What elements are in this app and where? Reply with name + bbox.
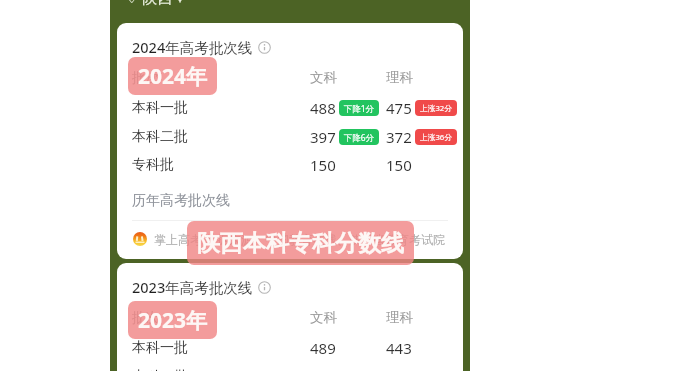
staticText: 上涨36分 <box>420 132 452 143</box>
staticText: 150 <box>310 155 336 175</box>
staticText: 理科 <box>386 69 413 86</box>
staticText: 443 <box>386 338 412 358</box>
staticText: 专科批 <box>132 156 174 174</box>
staticText: 文科 <box>310 69 337 86</box>
button[interactable]: 2023年高考批次线 <box>132 276 271 298</box>
button[interactable]: 历年高考批次线 <box>132 188 230 214</box>
staticText: 2024年高考批次线 <box>132 37 253 57</box>
staticText: 2024年 <box>138 62 208 91</box>
staticText: 489 <box>310 338 336 358</box>
staticText: 本科二批 <box>132 368 188 371</box>
button[interactable]: 本科二批 <box>132 123 310 151</box>
button[interactable]: 本科一批 <box>132 334 310 362</box>
staticText: 2023年高考批次线 <box>132 277 253 297</box>
staticText: 下降6分 <box>344 132 374 143</box>
button[interactable]: 本科一批 <box>132 94 310 122</box>
other: 说明 <box>258 41 271 54</box>
other: 说明 <box>258 281 271 294</box>
staticText: 本科一批 <box>132 339 188 357</box>
staticText: 397 <box>310 127 336 147</box>
staticText: 下降1分 <box>344 103 374 114</box>
staticText: 150 <box>386 155 412 175</box>
button[interactable]: 掌上高考 数据来源：中国教育在线、陕西省教育考试院 <box>132 229 446 249</box>
staticText: ♡ 陕西 ▾ <box>125 0 184 7</box>
staticText: 批次 <box>132 69 159 86</box>
staticText: 掌上高考 数据来源：中国教育在线、陕西省教育考试院 <box>154 231 446 247</box>
staticText: 陕西本科专科分数线 <box>197 229 404 258</box>
button[interactable]: ♡ 陕西 ▾ <box>125 0 184 7</box>
staticText: 批次 <box>132 309 159 326</box>
staticText: 上涨32分 <box>420 103 452 114</box>
staticText: 理科 <box>386 309 413 326</box>
button[interactable]: 本科二批 <box>132 363 310 371</box>
button[interactable]: 专科批 <box>132 151 310 179</box>
staticText: 历年高考批次线 <box>132 192 230 210</box>
staticText: 2023年 <box>138 306 208 335</box>
staticText: 488 <box>310 98 336 118</box>
staticText: 475 <box>386 98 412 118</box>
staticText: 本科一批 <box>132 99 188 117</box>
staticText: 本科二批 <box>132 128 188 146</box>
button[interactable]: 2024年高考批次线 <box>132 36 271 58</box>
staticText: 372 <box>386 127 412 147</box>
staticText: 文科 <box>310 309 337 326</box>
